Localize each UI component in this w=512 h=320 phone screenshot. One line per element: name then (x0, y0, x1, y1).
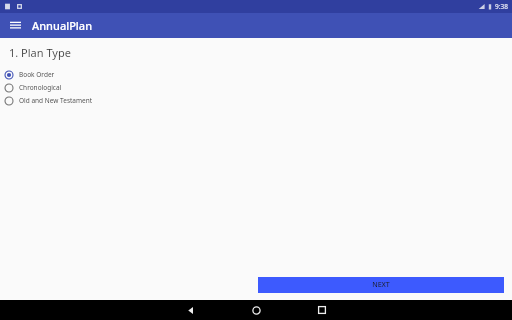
button[interactable]: Recent apps (303, 300, 341, 320)
button[interactable]: Home (237, 300, 275, 320)
button[interactable]: Old and New Testament (0, 94, 512, 107)
button[interactable]: Open navigation menu (6, 17, 24, 35)
staticText: Book Order (19, 70, 55, 79)
button[interactable]: NEXT (258, 277, 504, 293)
staticText: NEXT (372, 280, 390, 290)
button[interactable]: Chronological (0, 81, 512, 94)
staticText: 1. Plan Type (9, 45, 71, 60)
staticText: 9:38 (495, 2, 508, 11)
staticText: Old and New Testament (19, 96, 93, 105)
staticText: AnnualPlan (32, 18, 93, 33)
button[interactable]: Book Order (0, 68, 512, 81)
button[interactable]: Back (171, 300, 209, 320)
staticText: Chronological (19, 83, 62, 92)
